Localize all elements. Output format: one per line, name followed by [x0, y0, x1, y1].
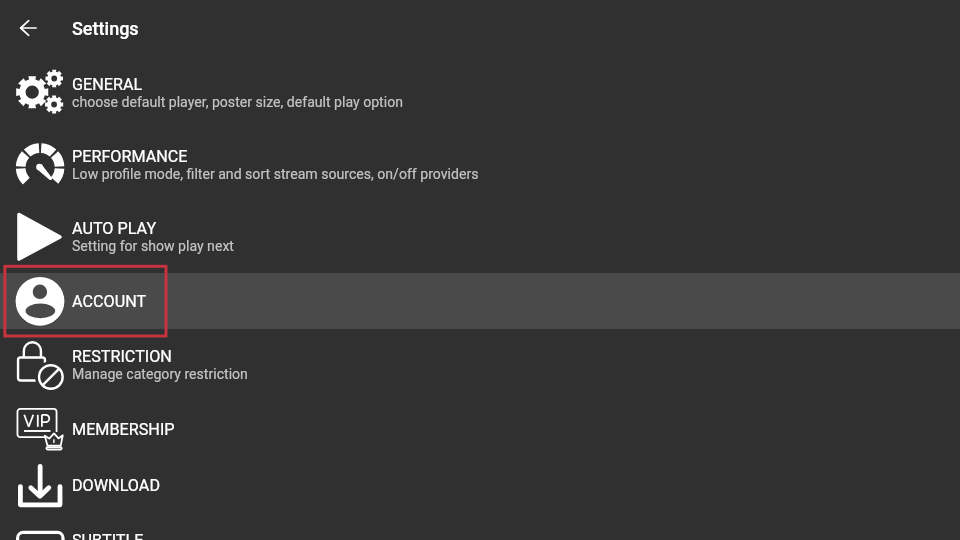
staticText: choose default player, poster size, defa…	[72, 94, 403, 111]
button[interactable]: Back	[10, 10, 46, 46]
staticText: RESTRICTION	[72, 347, 172, 366]
button[interactable]: GENERAL	[0, 57, 960, 129]
button[interactable]: MEMBERSHIP	[0, 401, 960, 457]
staticText: SUBTITLE	[72, 531, 144, 540]
button[interactable]: AUTO PLAY	[0, 201, 960, 273]
staticText: Settings	[72, 18, 139, 39]
staticText: Setting for show play next	[72, 238, 234, 255]
button[interactable]: DOWNLOAD	[0, 457, 960, 513]
button[interactable]: ACCOUNT	[0, 273, 960, 329]
staticText: ACCOUNT	[72, 292, 147, 311]
staticText: DOWNLOAD	[72, 476, 161, 495]
staticText: AUTO PLAY	[72, 219, 157, 238]
staticText: Low profile mode, filter and sort stream…	[72, 166, 479, 183]
button[interactable]: RESTRICTION	[0, 329, 960, 401]
staticText: Manage category restriction	[72, 366, 248, 383]
staticText: GENERAL	[72, 75, 143, 94]
staticText: PERFORMANCE	[72, 147, 188, 166]
staticText: MEMBERSHIP	[72, 420, 175, 439]
button[interactable]: SUBTITLE	[0, 513, 960, 540]
button[interactable]: PERFORMANCE	[0, 129, 960, 201]
